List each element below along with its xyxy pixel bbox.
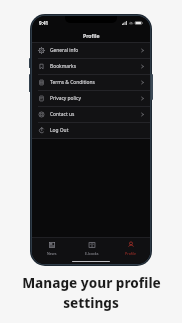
staticText: Log Out bbox=[50, 127, 69, 134]
button[interactable]: Bookmarks bbox=[32, 59, 150, 74]
staticText: Profile bbox=[83, 32, 100, 39]
button[interactable]: Contact us bbox=[32, 107, 150, 122]
button[interactable]: Terms & Conditions bbox=[32, 75, 150, 90]
staticText: Contact us bbox=[50, 111, 75, 118]
staticText: settings bbox=[63, 294, 119, 312]
button[interactable]: Privacy policy bbox=[32, 91, 150, 106]
button[interactable]: Profile bbox=[111, 238, 150, 258]
staticText: Privacy policy bbox=[50, 95, 81, 102]
staticText: E-books bbox=[85, 251, 99, 256]
staticText: General info bbox=[50, 47, 79, 54]
staticText: Bookmarks bbox=[50, 63, 76, 70]
staticText: Profile bbox=[125, 251, 137, 256]
staticText: News bbox=[47, 251, 57, 256]
staticText: 9:41 bbox=[39, 20, 49, 26]
staticText: Terms & Conditions bbox=[50, 79, 95, 86]
button[interactable]: General info bbox=[32, 43, 150, 58]
button[interactable]: News bbox=[32, 238, 72, 258]
staticText: Manage your profile bbox=[22, 274, 161, 292]
button[interactable]: Log Out bbox=[32, 123, 150, 138]
button[interactable]: E-books bbox=[72, 238, 111, 258]
